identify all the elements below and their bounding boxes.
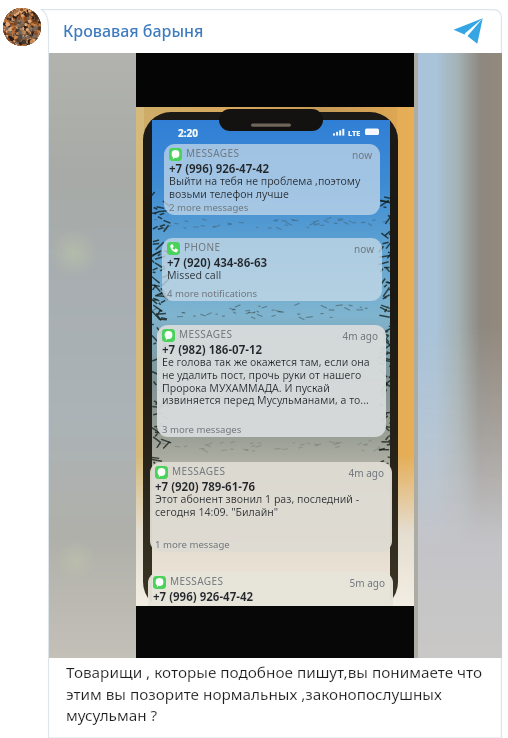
staticText: +7 (982) 186-07-12: [162, 342, 263, 358]
button[interactable]: MESSAGES: [164, 144, 380, 215]
staticText: сегодня 14:09. "Билайн": [155, 505, 279, 519]
staticText: +7 (996) 926-47-42: [153, 589, 254, 605]
staticText: PHONE: [184, 240, 221, 254]
staticText: Этот абонент звонил 1 раз, последний -: [155, 492, 360, 506]
staticText: +7 (996) 926-47-42: [169, 161, 270, 177]
staticText: 3 more messages: [162, 423, 242, 436]
staticText: MESSAGES: [172, 464, 226, 478]
staticText: 2 more messages: [169, 201, 249, 214]
staticText: Пророка МУХАММАДА. И пускай: [162, 381, 330, 395]
staticText: Ее голова так же окажется там, если она: [162, 355, 370, 369]
button[interactable]: MESSAGES: [150, 462, 392, 552]
staticText: не удалить пост, прочь руки от нашего: [162, 368, 362, 382]
staticText: 2:20: [178, 126, 198, 140]
staticText: 4m ago: [332, 329, 378, 343]
staticText: LTE: [348, 128, 361, 138]
button[interactable]: Telegram: [452, 15, 484, 47]
button[interactable]: Кровавая барыня: [49, 9, 502, 53]
button[interactable]: MESSAGES: [148, 572, 393, 640]
staticText: 4 more notifications: [167, 287, 258, 300]
staticText: 4m ago: [338, 466, 384, 480]
staticText: возьми телефон лучше: [169, 187, 289, 201]
staticText: MESSAGES: [170, 574, 224, 588]
staticText: +7 (920) 789-61-76: [155, 479, 256, 495]
staticText: 5m ago: [339, 576, 385, 590]
staticText: Missed call: [167, 268, 222, 282]
staticText: +7 (920) 434-86-63: [167, 255, 268, 271]
button[interactable]: MESSAGES: [157, 325, 386, 437]
staticText: извиняется перед Мусульманами, а то...: [162, 393, 369, 407]
button[interactable]: Channel avatar: [3, 8, 41, 46]
staticText: 1 more message: [155, 538, 230, 551]
staticText: Кровавая барыня: [63, 20, 204, 42]
staticText: MESSAGES: [186, 146, 240, 160]
staticText: MESSAGES: [179, 327, 233, 341]
button[interactable]: PHONE: [162, 238, 382, 301]
staticText: now: [328, 242, 374, 256]
staticText: Выйти на тебя не проблема ,поэтому: [169, 174, 361, 188]
staticText: now: [326, 148, 372, 162]
staticText: Товарищи , которые подобное пишут,вы пон…: [66, 662, 508, 725]
